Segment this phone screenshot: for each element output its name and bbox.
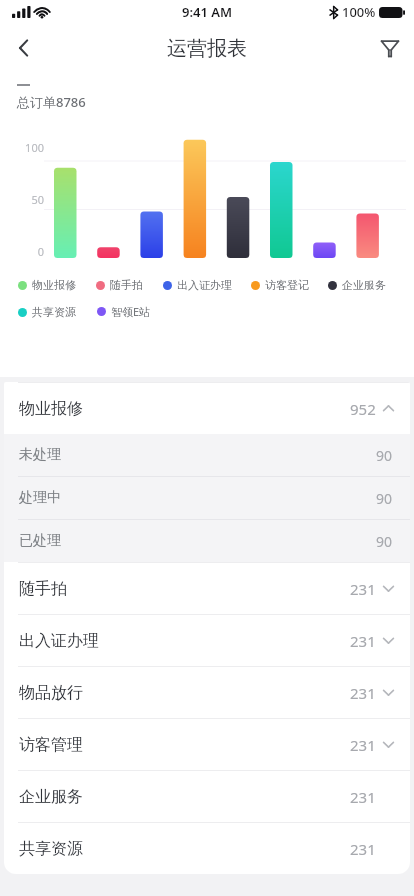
button[interactable]: 未处理 — [4, 434, 410, 476]
staticText: 访客登记 — [265, 278, 309, 292]
staticText: 未处理 — [19, 446, 61, 464]
staticText: 231 — [350, 787, 376, 807]
staticText: 物业报修 — [32, 278, 76, 292]
staticText: 物品放行 — [19, 683, 83, 703]
staticText: 已处理 — [19, 532, 61, 550]
button[interactable]: Back — [0, 24, 48, 72]
staticText: 231 — [350, 579, 376, 599]
staticText: 运营报表 — [167, 36, 247, 61]
staticText: 9:41 AM — [182, 3, 233, 21]
staticText: 企业服务 — [342, 278, 386, 292]
button[interactable]: 随手拍 — [4, 563, 410, 614]
staticText: 出入证办理 — [177, 278, 232, 292]
staticText: 0 — [37, 244, 44, 259]
staticText: 智领E站 — [111, 304, 151, 319]
button[interactable]: 出入证办理 — [4, 615, 410, 666]
button[interactable]: 物业报修 — [4, 383, 410, 434]
staticText: 共享资源 — [19, 839, 83, 859]
button[interactable]: 已处理 — [4, 520, 410, 562]
staticText: 总订单8786 — [17, 93, 86, 111]
button[interactable]: Filter — [366, 24, 414, 72]
button[interactable]: 访客管理 — [4, 719, 410, 770]
staticText: 随手拍 — [19, 579, 67, 599]
staticText: 物业报修 — [19, 399, 83, 419]
button[interactable]: 处理中 — [4, 477, 410, 519]
staticText: 231 — [350, 631, 376, 651]
staticText: 100% — [342, 3, 376, 21]
staticText: 企业服务 — [19, 787, 83, 807]
staticText: 90 — [376, 446, 393, 465]
staticText: 231 — [350, 839, 376, 859]
staticText: 处理中 — [19, 489, 61, 507]
staticText: 出入证办理 — [19, 631, 99, 651]
button[interactable]: 共享资源 — [4, 823, 410, 874]
staticText: 100 — [25, 140, 44, 155]
staticText: 231 — [350, 683, 376, 703]
staticText: 231 — [350, 735, 376, 755]
button[interactable]: 企业服务 — [4, 771, 410, 822]
staticText: 访客管理 — [19, 735, 83, 755]
staticText: 952 — [350, 399, 376, 419]
staticText: 共享资源 — [32, 305, 76, 319]
staticText: 90 — [376, 489, 393, 508]
staticText: 50 — [31, 192, 44, 207]
button[interactable]: 物品放行 — [4, 667, 410, 718]
staticText: 随手拍 — [110, 278, 143, 292]
staticText: 90 — [376, 532, 393, 551]
